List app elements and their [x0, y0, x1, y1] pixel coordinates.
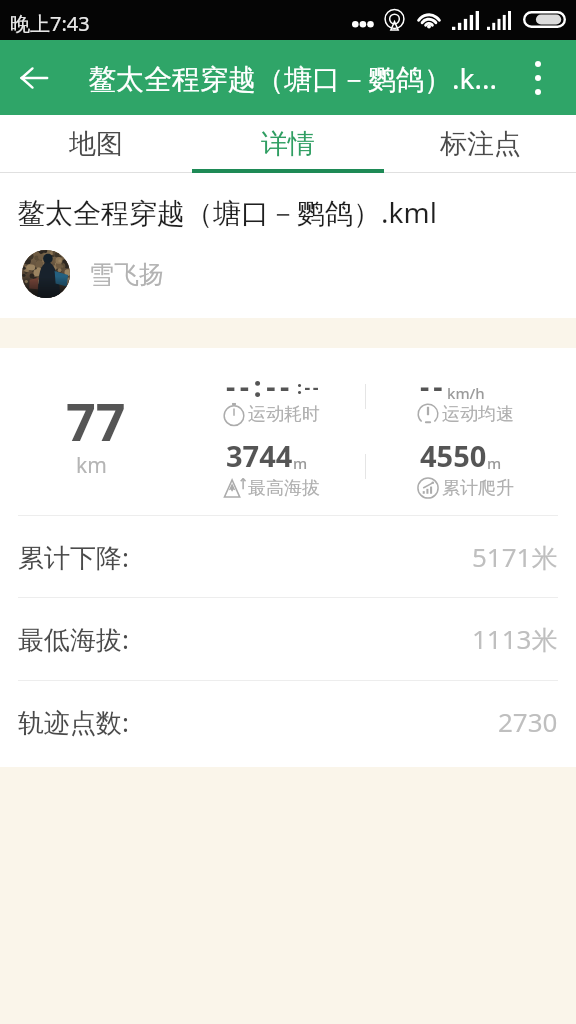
staticText: 地图 [69, 127, 123, 161]
staticText: 雪飞扬 [89, 259, 164, 290]
button[interactable]: 最低海拔: [0, 597, 576, 680]
staticText: km/h [447, 383, 485, 403]
staticText: 2730 [498, 704, 558, 739]
staticText: 详情 [261, 127, 315, 161]
staticText: 最低海拔: [18, 621, 129, 657]
staticText: km [76, 451, 107, 480]
staticText: 3744 [226, 436, 293, 475]
staticText: 轨迹点数: [18, 704, 129, 740]
staticText: 运动耗时 [248, 403, 320, 426]
button[interactable]: 标注点 [384, 115, 576, 173]
staticText: 5171米 [472, 539, 558, 575]
staticText: 77 [66, 385, 126, 456]
staticText: 1113米 [472, 621, 558, 657]
staticText: 最高海拔 [248, 477, 320, 500]
button[interactable]: Back [12, 56, 56, 100]
staticText: -- [420, 366, 447, 405]
staticText: 鳌太全程穿越（塘口－鹦鸽）.k... [88, 59, 497, 97]
staticText: :-- [297, 375, 322, 400]
button[interactable]: 雪飞扬 [22, 250, 164, 298]
staticText: 累计爬升 [442, 477, 514, 500]
button[interactable]: More options [516, 56, 560, 100]
button[interactable]: 地图 [0, 115, 192, 173]
staticText: --:-- [226, 366, 294, 405]
staticText: m [487, 453, 502, 473]
staticText: 标注点 [440, 127, 521, 161]
button[interactable]: 累计下降: [0, 515, 576, 598]
staticText: m [293, 453, 308, 473]
staticText: 4550 [420, 436, 487, 475]
button[interactable]: 详情 [192, 115, 384, 173]
staticText: 晚上7:43 [10, 10, 90, 37]
button[interactable]: 轨迹点数: [0, 680, 576, 763]
staticText: 累计下降: [18, 539, 129, 575]
staticText: 鳌太全程穿越（塘口－鹦鸽）.kml [17, 193, 437, 231]
staticText: 运动均速 [442, 403, 514, 426]
